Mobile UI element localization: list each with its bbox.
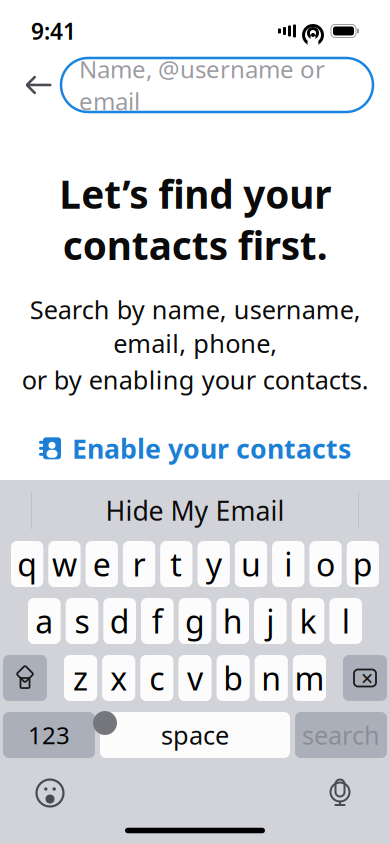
button[interactable]: r <box>123 541 155 587</box>
staticText: l <box>342 600 350 642</box>
staticText: k <box>299 600 316 642</box>
button[interactable]: Shift <box>3 655 47 701</box>
button[interactable]: n <box>255 655 288 701</box>
button[interactable]: y <box>197 541 230 587</box>
button[interactable]: o <box>309 541 342 587</box>
button[interactable]: Hide My Email <box>81 485 308 536</box>
staticText: Hide My Email <box>105 493 284 528</box>
staticText: p <box>353 543 373 585</box>
staticText: a <box>35 600 53 642</box>
staticText: b <box>223 657 243 699</box>
button[interactable]: l <box>329 598 362 644</box>
button[interactable]: space <box>100 712 290 758</box>
button[interactable]: s <box>66 598 98 644</box>
button[interactable]: k <box>292 598 324 644</box>
button[interactable]: w <box>48 541 81 587</box>
staticText: t <box>170 543 182 585</box>
staticText: 9:41 <box>31 16 76 46</box>
staticText: × <box>361 664 373 692</box>
staticText: search <box>302 718 380 752</box>
staticText: s <box>74 600 89 642</box>
staticText: 123 <box>28 719 70 751</box>
button[interactable]: search <box>295 712 387 758</box>
button[interactable]: a <box>28 598 61 644</box>
staticText: Search by name, username, email, phone, <box>29 293 360 360</box>
staticText: v <box>187 657 203 699</box>
button[interactable]: z <box>64 655 97 701</box>
button[interactable]: m <box>293 655 326 701</box>
staticText: space <box>161 718 229 752</box>
staticText: n <box>261 657 281 699</box>
staticText: x <box>110 657 127 699</box>
staticText: w <box>52 543 77 585</box>
staticText: q <box>17 543 37 585</box>
button[interactable]: b <box>217 655 250 701</box>
button[interactable]: 123 <box>3 712 95 758</box>
button[interactable]: Enable your contacts <box>31 425 359 472</box>
staticText: d <box>110 600 130 642</box>
button[interactable]: Dictation <box>318 771 362 815</box>
staticText: e <box>93 543 111 585</box>
button[interactable]: h <box>216 598 249 644</box>
staticText: f <box>152 600 163 642</box>
staticText: o <box>316 543 335 585</box>
button[interactable]: d <box>103 598 136 644</box>
staticText: z <box>73 657 88 699</box>
staticText: Let’s find your contacts first. <box>59 168 331 271</box>
button[interactable]: Name, @username or email <box>61 58 373 112</box>
staticText: Name, @username or email <box>79 53 325 117</box>
button[interactable]: i <box>272 541 304 587</box>
staticText: or by enabling your contacts. <box>21 363 368 397</box>
staticText: r <box>133 543 146 585</box>
staticText: i <box>284 543 292 585</box>
button[interactable]: v <box>178 655 211 701</box>
staticText: g <box>185 600 205 642</box>
button[interactable]: g <box>179 598 211 644</box>
button[interactable]: f <box>141 598 174 644</box>
button[interactable]: c <box>140 655 173 701</box>
button[interactable]: t <box>160 541 192 587</box>
staticText: h <box>223 600 243 642</box>
button[interactable]: x <box>102 655 135 701</box>
staticText: c <box>149 657 164 699</box>
staticText: m <box>294 657 324 699</box>
staticText: y <box>206 543 222 585</box>
button[interactable]: p <box>347 541 379 587</box>
button[interactable]: Emoji <box>28 771 72 815</box>
staticText: j <box>266 600 274 642</box>
button[interactable]: e <box>86 541 118 587</box>
staticText: u <box>241 543 261 585</box>
button[interactable]: q <box>11 541 43 587</box>
button[interactable]: Delete <box>343 655 387 701</box>
button[interactable]: u <box>235 541 267 587</box>
staticText: Enable your contacts <box>72 431 351 466</box>
button[interactable]: Back <box>17 63 61 107</box>
button[interactable]: j <box>254 598 287 644</box>
